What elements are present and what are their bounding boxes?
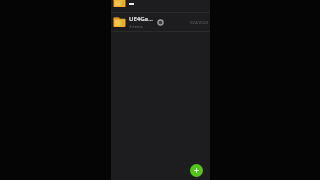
button[interactable]: Loading xyxy=(157,19,164,26)
staticText: 3 items xyxy=(129,24,143,29)
button[interactable] xyxy=(111,0,210,12)
button[interactable]: Add xyxy=(190,164,203,177)
staticText: UE4Game xyxy=(129,15,157,23)
button[interactable]: UE4Game xyxy=(111,13,210,31)
staticText: 10/4/2023 xyxy=(189,20,208,25)
